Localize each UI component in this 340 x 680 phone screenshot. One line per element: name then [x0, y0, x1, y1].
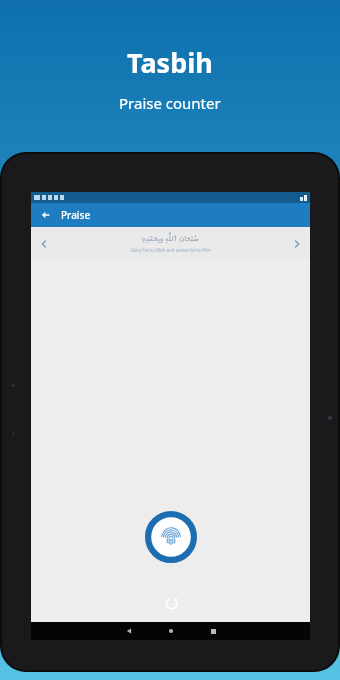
- button[interactable]: Back: [115, 622, 143, 640]
- button[interactable]: Recents: [199, 622, 227, 640]
- button[interactable]: Home: [157, 622, 185, 640]
- staticText: Praise: [61, 208, 91, 222]
- button[interactable]: Reset counter: [160, 592, 182, 614]
- staticText: Praise counter: [119, 93, 221, 113]
- staticText: Tasbih: [127, 44, 213, 81]
- button[interactable]: Previous praise: [37, 237, 51, 251]
- button[interactable]: Count praise: [144, 510, 198, 564]
- staticText: Glory be to Allah and praise be to Him: [130, 247, 211, 253]
- button[interactable]: Back: [37, 207, 53, 223]
- staticText: سُبْحَانَ ٱللَّٰهِ وَبِحَمْدِهِ: [142, 234, 199, 244]
- button[interactable]: Next praise: [290, 237, 304, 251]
